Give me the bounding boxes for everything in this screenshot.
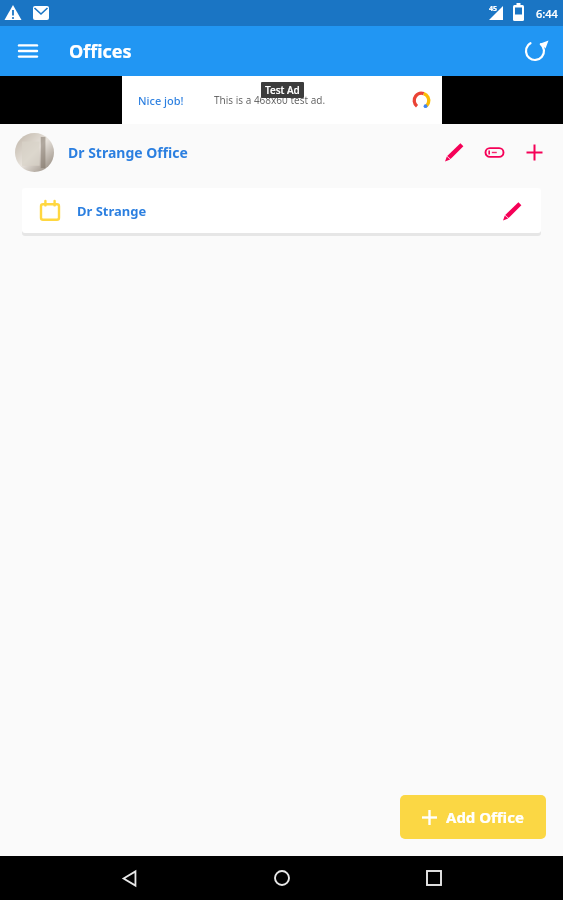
staticText: 45 (489, 4, 498, 14)
button[interactable]: Add Office (400, 795, 546, 839)
staticText: 6:44 (536, 6, 558, 21)
button[interactable]: Edit office (439, 137, 469, 167)
button[interactable]: Recent apps (410, 856, 458, 900)
staticText: Nice job! (138, 93, 184, 108)
button[interactable]: Nice job! (122, 76, 442, 124)
button[interactable]: Dr Strange Office (68, 143, 188, 162)
button[interactable]: Open navigation menu (10, 33, 46, 69)
button[interactable]: Home (258, 856, 306, 900)
button[interactable]: Office card (479, 137, 509, 167)
button[interactable]: Add person (519, 137, 549, 167)
button[interactable] (15, 133, 54, 172)
button[interactable]: Edit Dr Strange (497, 196, 527, 226)
staticText: Test Ad (265, 83, 300, 97)
staticText: Dr Strange (77, 202, 147, 220)
button[interactable]: Refresh (515, 31, 555, 71)
staticText: Offices (69, 39, 132, 64)
button[interactable]: Dr Strange (22, 188, 541, 233)
button[interactable]: Back (105, 856, 153, 900)
staticText: This is a 468x60 test ad. (214, 93, 326, 107)
staticText: Add Office (446, 807, 524, 827)
